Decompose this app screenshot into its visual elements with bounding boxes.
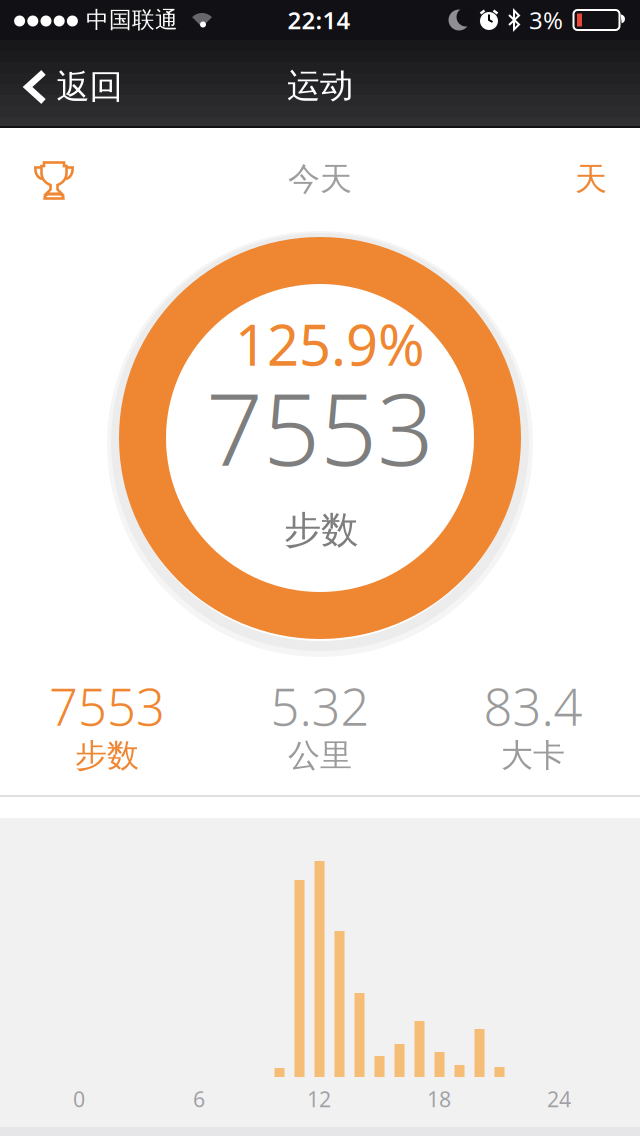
staticText: 中国联通 xyxy=(86,6,178,34)
staticText: 返回 xyxy=(56,66,122,107)
staticText: 18 xyxy=(427,1085,451,1113)
staticText: 22:14 xyxy=(287,4,350,36)
staticText: 6 xyxy=(193,1085,205,1113)
staticText: 运动 xyxy=(287,65,353,106)
button[interactable] xyxy=(24,151,84,210)
staticText: 公里 xyxy=(288,736,352,775)
staticText: 7553 xyxy=(49,672,165,740)
staticText: 今天 xyxy=(288,159,352,199)
staticText: 步数 xyxy=(75,736,139,775)
staticText: 0 xyxy=(73,1085,85,1113)
staticText: 12 xyxy=(307,1085,331,1113)
staticText: 3% xyxy=(529,4,563,36)
button[interactable]: 返回 xyxy=(5,43,132,131)
staticText: 步数 xyxy=(284,507,358,553)
staticText: 5.32 xyxy=(270,672,369,740)
staticText: 24 xyxy=(547,1085,571,1113)
button[interactable]: 天 xyxy=(565,149,617,209)
staticText: 大卡 xyxy=(501,736,565,775)
staticText: 83.4 xyxy=(483,672,582,740)
staticText: 天 xyxy=(575,159,607,199)
staticText: 125.9% xyxy=(235,307,425,381)
staticText: 7553 xyxy=(206,361,434,493)
